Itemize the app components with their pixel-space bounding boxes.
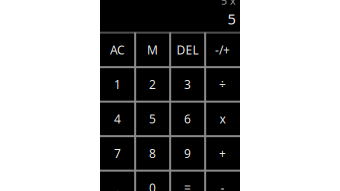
button[interactable]: 3 <box>170 67 205 101</box>
button[interactable]: + <box>205 136 240 170</box>
button[interactable]: . <box>100 170 135 191</box>
staticText: 1 <box>114 76 121 92</box>
staticText: . <box>116 180 119 191</box>
button[interactable]: ÷ <box>205 67 240 101</box>
button[interactable]: M <box>135 32 170 67</box>
button[interactable]: - <box>205 170 240 191</box>
button[interactable]: x <box>205 101 240 136</box>
staticText: 9 <box>184 145 191 161</box>
staticText: 6 <box>184 111 191 127</box>
button[interactable]: 4 <box>100 101 135 136</box>
button[interactable]: DEL <box>170 32 205 67</box>
button[interactable]: 2 <box>135 67 170 101</box>
staticText: 2 <box>149 76 156 92</box>
button[interactable]: AC <box>100 32 135 67</box>
button[interactable]: 0 <box>135 170 170 191</box>
staticText: 7 <box>114 145 121 161</box>
staticText: = <box>184 180 191 191</box>
staticText: DEL <box>176 42 198 58</box>
staticText: 5 x <box>221 0 236 8</box>
button[interactable]: 6 <box>170 101 205 136</box>
staticText: M <box>147 42 158 58</box>
button[interactable]: -/+ <box>205 32 240 67</box>
button[interactable]: 1 <box>100 67 135 101</box>
button[interactable]: 7 <box>100 136 135 170</box>
staticText: + <box>219 145 226 161</box>
button[interactable]: 8 <box>135 136 170 170</box>
staticText: x <box>219 111 225 127</box>
staticText: 3 <box>184 76 191 92</box>
button[interactable]: = <box>170 170 205 191</box>
staticText: 5 <box>149 111 156 127</box>
staticText: 8 <box>149 145 156 161</box>
staticText: AC <box>110 42 125 58</box>
staticText: 0 <box>149 180 156 191</box>
staticText: 4 <box>114 111 121 127</box>
staticText: ÷ <box>219 76 226 92</box>
staticText: - <box>220 180 224 191</box>
staticText: -/+ <box>215 42 230 58</box>
button[interactable]: 5 <box>135 101 170 136</box>
button[interactable]: 9 <box>170 136 205 170</box>
staticText: 5 <box>227 9 235 28</box>
